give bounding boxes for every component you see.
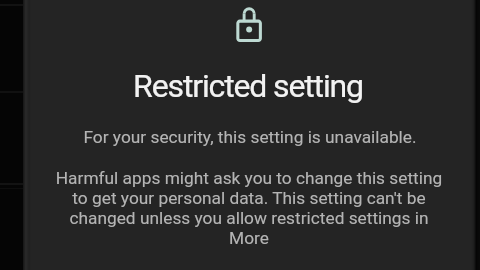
staticText: Harmful apps might ask you to change thi… xyxy=(54,168,444,248)
staticText: For your security, this setting is unava… xyxy=(29,127,471,147)
other: Restricted setting lock xyxy=(234,4,264,46)
staticText: Restricted setting xyxy=(27,67,469,105)
button[interactable]: Restricted setting lock xyxy=(31,0,473,270)
